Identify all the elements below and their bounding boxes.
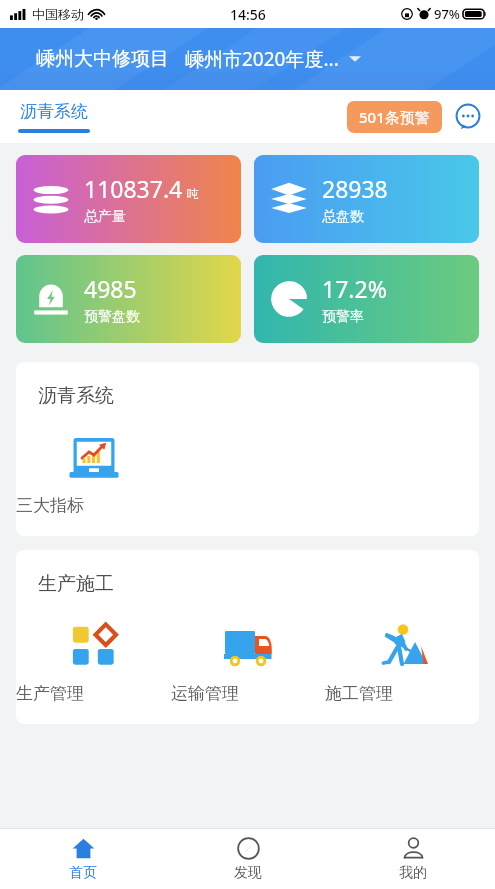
staticText: 17.2% xyxy=(322,273,387,304)
button[interactable]: 4985 xyxy=(16,255,241,343)
staticText: 预警率 xyxy=(322,308,364,326)
button[interactable]: 沥青系统 xyxy=(18,101,90,133)
staticText: 501条预警 xyxy=(359,107,430,127)
staticText: 110837.4 xyxy=(84,173,183,204)
staticText: 97% xyxy=(434,5,460,23)
staticText: 生产管理 xyxy=(16,683,171,704)
staticText: 14:56 xyxy=(230,5,266,24)
button[interactable]: 28938 xyxy=(254,155,479,243)
button[interactable]: 运输管理 xyxy=(171,618,325,706)
staticText: 总产量 xyxy=(84,208,126,226)
staticText: 嵊州大中修项目 xyxy=(36,47,169,71)
staticText: 嵊州市2020年度... xyxy=(185,46,339,72)
staticText: 4985 xyxy=(84,273,137,304)
button[interactable]: 施工管理 xyxy=(325,618,479,706)
button[interactable]: 17.2% xyxy=(254,255,479,343)
button[interactable]: 三大指标 xyxy=(16,430,171,518)
staticText: 运输管理 xyxy=(171,683,325,704)
button[interactable]: 首页 xyxy=(0,829,165,889)
staticText: 首页 xyxy=(69,864,97,882)
button[interactable]: 我的 xyxy=(330,829,495,889)
button[interactable]: 生产管理 xyxy=(16,618,171,706)
staticText: 沥青系统 xyxy=(38,384,114,408)
staticText: 生产施工 xyxy=(38,572,114,596)
staticText: 我的 xyxy=(399,864,427,882)
button[interactable]: 501条预警 xyxy=(347,101,442,133)
staticText: 中国移动 xyxy=(32,6,84,22)
staticText: 28938 xyxy=(322,173,388,204)
staticText: 总盘数 xyxy=(322,208,364,226)
button[interactable]: 消息 xyxy=(453,102,483,132)
button[interactable]: 110837.4 xyxy=(16,155,241,243)
staticText: 发现 xyxy=(234,864,262,882)
staticText: 沥青系统 xyxy=(20,101,88,122)
staticText: 施工管理 xyxy=(325,683,479,704)
staticText: 预警盘数 xyxy=(84,308,140,326)
button[interactable]: 展开项目选择 xyxy=(345,49,365,69)
staticText: 吨 xyxy=(187,186,199,201)
button[interactable]: 发现 xyxy=(165,829,330,889)
staticText: 三大指标 xyxy=(16,495,171,516)
